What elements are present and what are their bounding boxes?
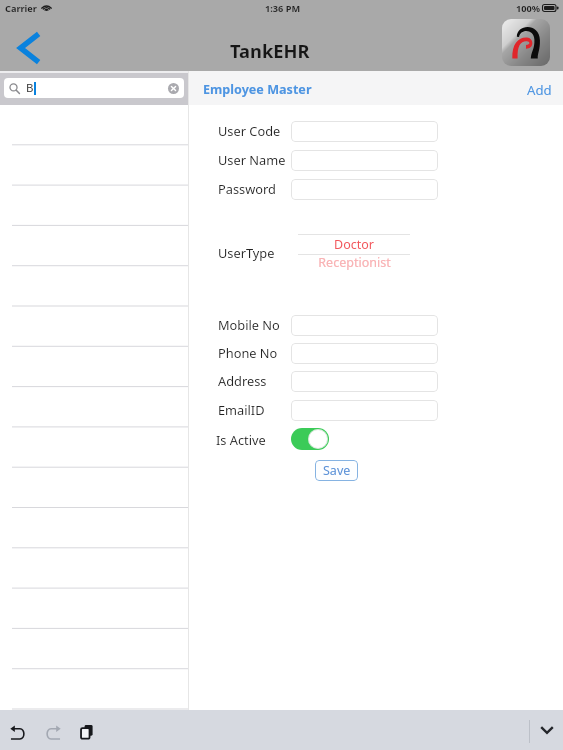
button[interactable] xyxy=(0,665,188,705)
button[interactable] xyxy=(291,121,438,142)
button[interactable]: Back xyxy=(8,27,48,69)
staticText: UserType xyxy=(218,244,275,261)
staticText: User Code xyxy=(218,122,281,139)
staticText: Is Active xyxy=(216,431,266,448)
button[interactable] xyxy=(291,315,438,336)
button[interactable] xyxy=(0,425,188,465)
staticText: B xyxy=(26,80,34,96)
button[interactable]: Employee Master xyxy=(203,81,312,98)
button[interactable] xyxy=(291,179,438,200)
staticText: Save xyxy=(323,462,351,479)
button[interactable] xyxy=(0,305,188,345)
staticText: TankEHR xyxy=(230,38,310,63)
button[interactable]: Paste xyxy=(71,718,103,746)
staticText: EmailID xyxy=(218,401,265,418)
button[interactable]: Hide keyboard xyxy=(534,716,560,744)
staticText: Mobile No xyxy=(218,316,280,333)
button[interactable] xyxy=(0,225,188,265)
staticText: Employee Master xyxy=(203,81,312,98)
button[interactable]: Add xyxy=(527,81,552,99)
staticText: Password xyxy=(218,180,276,197)
button[interactable]: Is Active toggle xyxy=(291,428,329,450)
staticText: User Name xyxy=(218,151,286,168)
button[interactable] xyxy=(0,185,188,225)
staticText: Receptionist xyxy=(318,254,391,271)
button[interactable] xyxy=(0,625,188,665)
button[interactable]: Redo xyxy=(37,718,69,746)
staticText: Add xyxy=(527,81,552,99)
button[interactable] xyxy=(291,371,438,392)
button[interactable] xyxy=(291,400,438,421)
button[interactable] xyxy=(0,345,188,385)
button[interactable] xyxy=(291,150,438,171)
staticText: 100% xyxy=(516,2,541,14)
button[interactable] xyxy=(0,265,188,305)
staticText: Address xyxy=(218,372,267,389)
button[interactable]: Save xyxy=(315,460,358,481)
staticText: Doctor xyxy=(334,236,374,253)
button[interactable] xyxy=(0,105,188,145)
staticText: Phone No xyxy=(218,344,278,361)
button[interactable]: Undo xyxy=(2,718,34,746)
button[interactable] xyxy=(0,385,188,425)
button[interactable] xyxy=(0,465,188,505)
button[interactable] xyxy=(0,505,188,545)
staticText: Carrier xyxy=(5,2,37,14)
button[interactable]: B xyxy=(9,78,179,98)
button[interactable] xyxy=(291,343,438,364)
button[interactable] xyxy=(0,545,188,585)
button[interactable] xyxy=(0,585,188,625)
staticText: 1:36 PM xyxy=(265,2,301,14)
